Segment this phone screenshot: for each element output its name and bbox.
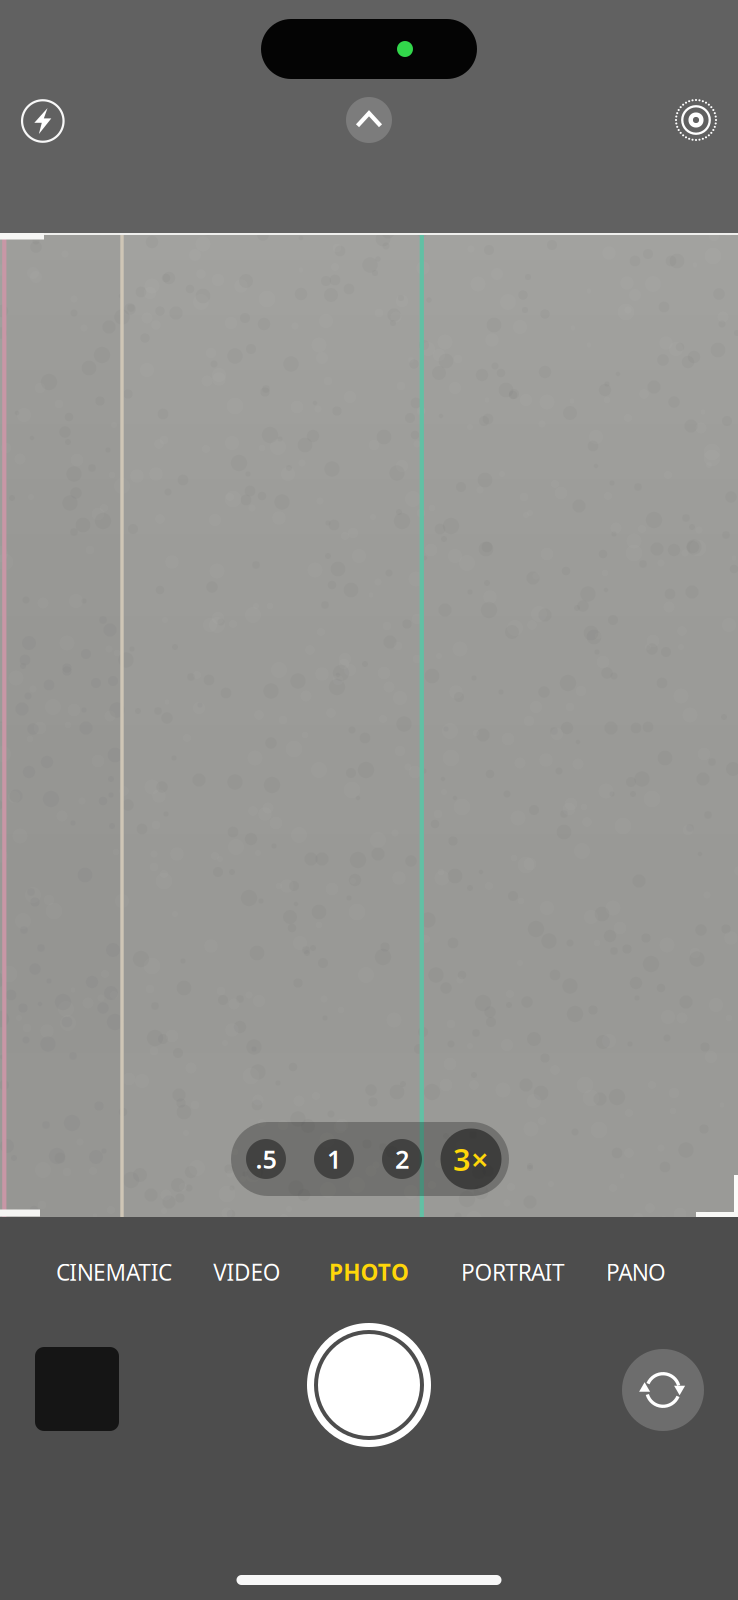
button[interactable]: Switch camera [615,1342,711,1438]
button[interactable]: Flash [10,88,76,154]
button[interactable]: More camera controls [336,87,402,153]
button[interactable]: .5 [243,1126,289,1192]
staticText: 3× [453,1139,489,1179]
button[interactable]: Take photo [299,1315,439,1455]
staticText: .5 [255,1142,276,1176]
button[interactable]: PORTRAIT [447,1243,579,1301]
staticText: PORTRAIT [461,1257,565,1287]
button[interactable]: Live Photo [663,87,729,153]
button[interactable]: PHOTO [315,1243,423,1301]
staticText: CINEMATIC [56,1257,172,1287]
button[interactable]: CINEMATIC [42,1243,186,1301]
staticText: VIDEO [213,1257,281,1287]
button[interactable]: Photo library [35,1347,119,1431]
button[interactable]: 2 [379,1126,425,1192]
button[interactable]: VIDEO [199,1243,295,1301]
staticText: 2 [395,1142,409,1176]
button[interactable]: 1 [311,1126,357,1192]
staticText: 1 [327,1142,341,1176]
button[interactable]: 3× [437,1126,504,1192]
staticText: PANO [606,1257,666,1287]
button[interactable]: PANO [592,1243,680,1301]
staticText: PHOTO [329,1257,409,1287]
